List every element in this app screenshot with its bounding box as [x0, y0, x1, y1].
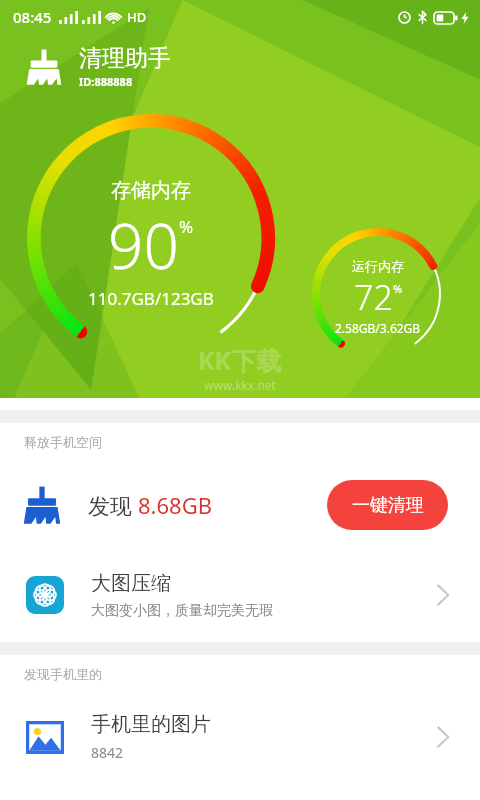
- staticText: 发现手机里的: [24, 666, 102, 682]
- staticText: 运行内存: [352, 258, 404, 274]
- staticText: 大图压缩: [91, 571, 171, 596]
- staticText: ID:888888: [79, 74, 133, 89]
- button[interactable]: 一键清理: [327, 480, 448, 530]
- staticText: 72: [354, 274, 393, 320]
- staticText: 大图变小图，质量却完美无瑕: [91, 602, 273, 620]
- staticText: %: [393, 281, 403, 296]
- staticText: 一键清理: [352, 494, 424, 517]
- button[interactable]: 手机里的图片: [0, 692, 480, 782]
- staticText: %: [179, 215, 194, 238]
- button[interactable]: 发现: [0, 460, 480, 550]
- button[interactable]: 大图压缩: [430, 582, 456, 608]
- staticText: 发现: [88, 490, 138, 520]
- staticText: 存储内存: [111, 178, 191, 203]
- staticText: www.kkx.net: [204, 377, 276, 393]
- staticText: 8.68GB: [138, 490, 212, 520]
- staticText: 释放手机空间: [24, 434, 102, 450]
- staticText: 8842: [91, 743, 124, 762]
- staticText: 08:45: [13, 7, 52, 27]
- button[interactable]: 手机里的图片: [430, 724, 456, 750]
- staticText: 手机里的图片: [91, 712, 211, 737]
- staticText: 2.58GB/3.62GB: [335, 320, 421, 336]
- staticText: 清理助手: [79, 44, 171, 73]
- staticText: 90: [108, 203, 179, 287]
- staticText: KK下载: [198, 343, 282, 377]
- staticText: 110.7GB/123GB: [88, 287, 214, 310]
- staticText: HD: [127, 8, 147, 26]
- button[interactable]: 大图压缩: [0, 550, 480, 640]
